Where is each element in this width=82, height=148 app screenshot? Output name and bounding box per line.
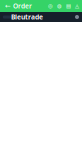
button[interactable]: Settings	[75, 15, 79, 19]
staticText: ◍	[57, 3, 62, 9]
button[interactable]: Alerts	[75, 3, 79, 9]
staticText: Order	[13, 2, 32, 10]
staticText: ←	[5, 2, 11, 10]
button[interactable]: Back	[3, 0, 13, 12]
staticText: ▤	[66, 3, 71, 9]
staticText: Bleutrade	[11, 13, 43, 21]
staticText: ◬	[75, 3, 79, 9]
staticText: ◎	[48, 3, 53, 9]
button[interactable]: Refresh	[48, 3, 53, 9]
button[interactable]: Chart	[66, 3, 71, 9]
button[interactable]: Wallet	[57, 3, 62, 9]
